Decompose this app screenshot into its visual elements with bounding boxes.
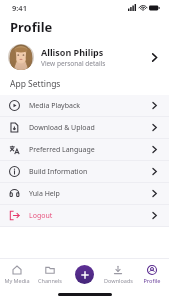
staticText: My Media	[4, 277, 30, 284]
button[interactable]: Download & Upload	[0, 117, 169, 138]
button[interactable]: Channels	[33, 264, 67, 284]
button[interactable]: Logout	[0, 205, 169, 226]
staticText: Media Playback	[29, 101, 149, 111]
staticText: Build Information	[29, 167, 149, 177]
staticText: 9:41	[12, 3, 27, 13]
button[interactable]: Preferred Language	[0, 139, 169, 160]
staticText: Allison Philips	[41, 46, 104, 58]
staticText: Preferred Language	[29, 145, 149, 155]
button[interactable]: My Media	[0, 264, 33, 284]
staticText: Channels	[38, 277, 62, 284]
button[interactable]: Build Information	[0, 161, 169, 182]
button[interactable]: Yula Help	[0, 183, 169, 204]
button[interactable]: Media Playback	[0, 95, 169, 116]
staticText: Logout	[29, 211, 149, 221]
staticText: Yula Help	[29, 189, 149, 199]
button[interactable]: Allison Philips	[0, 41, 169, 73]
button[interactable]: Profile	[135, 264, 169, 284]
staticText: Download & Upload	[29, 123, 149, 133]
staticText: Profile	[143, 277, 161, 284]
staticText: App Settings	[10, 78, 61, 90]
staticText: View personal details	[41, 59, 106, 68]
staticText: Downloads	[104, 277, 133, 284]
button[interactable]: Add	[75, 265, 94, 284]
staticText: Profile	[10, 18, 53, 36]
button[interactable]: Downloads	[101, 264, 135, 284]
